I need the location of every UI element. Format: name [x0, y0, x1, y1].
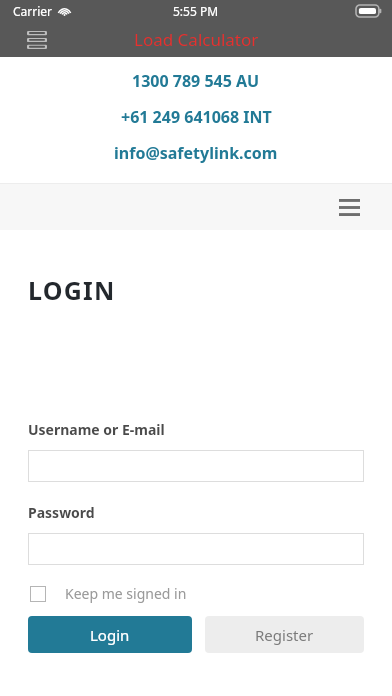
- button[interactable]: info@safetylink.com: [0, 142, 392, 164]
- staticText: 5:55 PM: [173, 3, 219, 19]
- staticText: Keep me signed in: [65, 584, 187, 603]
- button[interactable]: [28, 533, 364, 565]
- staticText: Load Calculator: [134, 28, 259, 51]
- staticText: Password: [28, 503, 95, 522]
- staticText: Carrier: [13, 3, 53, 19]
- staticText: LOGIN: [28, 273, 116, 307]
- button[interactable]: Menu: [20, 26, 54, 54]
- button[interactable]: 1300 789 545 AU: [0, 70, 392, 92]
- staticText: 1300 789 545 AU: [132, 70, 260, 92]
- button[interactable]: +61 249 641068 INT: [0, 106, 392, 128]
- button[interactable]: Register: [205, 616, 364, 653]
- staticText: info@safetylink.com: [114, 142, 278, 164]
- button[interactable]: Open navigation menu: [334, 192, 364, 222]
- staticText: Username or E-mail: [28, 420, 165, 439]
- button[interactable]: Keep me signed in: [28, 582, 187, 605]
- staticText: Register: [255, 625, 314, 645]
- staticText: +61 249 641068 INT: [121, 106, 272, 128]
- button[interactable]: [28, 450, 364, 482]
- staticText: Login: [90, 625, 130, 645]
- button[interactable]: Login: [28, 616, 192, 653]
